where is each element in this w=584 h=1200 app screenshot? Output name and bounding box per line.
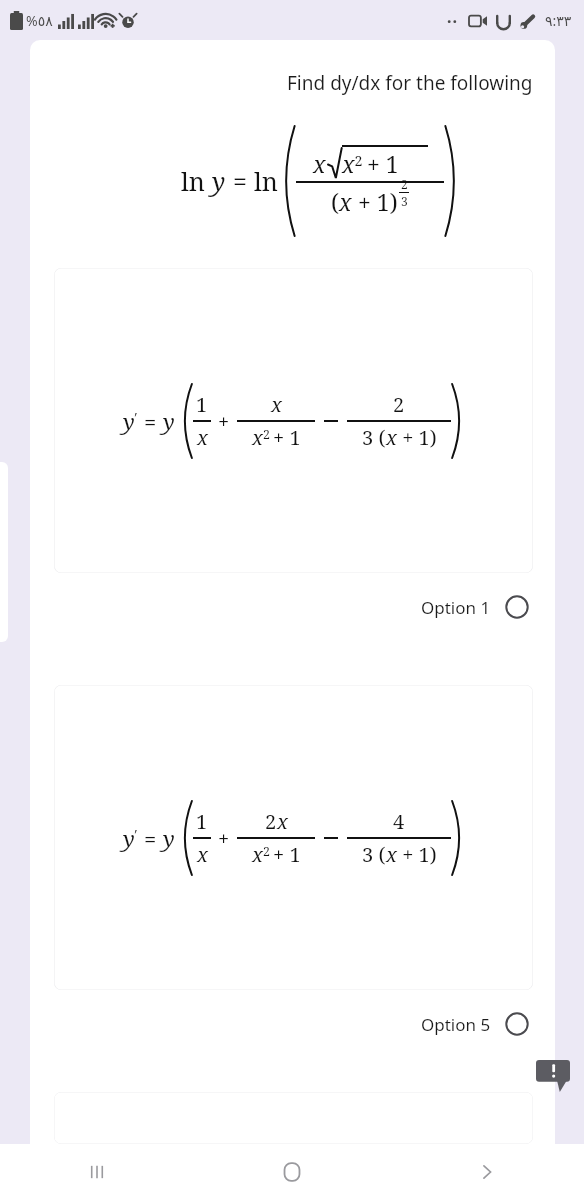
staticText: %٥٨ xyxy=(26,11,53,30)
staticText: + 1 xyxy=(273,424,301,451)
staticText: + xyxy=(218,825,230,852)
staticText: 3 ( xyxy=(362,841,386,868)
staticText: x2 xyxy=(252,424,270,451)
staticText: Find dy/dx for the following xyxy=(287,70,533,96)
staticText: x xyxy=(197,841,208,868)
staticText: 3 xyxy=(401,193,408,209)
staticText: 1 xyxy=(196,808,208,835)
staticText: + 1) xyxy=(352,186,398,217)
staticText: x xyxy=(197,424,208,451)
staticText: 3 ( xyxy=(362,424,386,451)
staticText: ٩:٣٣ xyxy=(545,11,572,30)
staticText: x xyxy=(313,148,326,179)
staticText: ( xyxy=(331,186,339,217)
staticText: = xyxy=(233,164,247,198)
staticText: x xyxy=(271,391,282,418)
button[interactable]: Option 5 xyxy=(417,1008,533,1040)
staticText: + 1) xyxy=(397,841,437,868)
staticText: y xyxy=(163,823,175,853)
staticText: ln xyxy=(254,164,278,198)
staticText: 4 xyxy=(393,808,405,835)
staticText: Option 5 xyxy=(421,1013,491,1036)
staticText: x xyxy=(339,186,352,217)
staticText: = xyxy=(144,823,157,853)
staticText: 2 xyxy=(393,391,405,418)
button[interactable]: Home xyxy=(194,1144,389,1200)
staticText: 2 xyxy=(401,176,408,192)
staticText: + 1 xyxy=(273,841,301,868)
staticText: x2 xyxy=(252,841,270,868)
staticText: + 1) xyxy=(397,424,437,451)
staticText: ln xyxy=(181,164,212,198)
staticText: y′ xyxy=(123,406,138,436)
staticText: = xyxy=(144,406,157,436)
button[interactable]: y′ xyxy=(54,685,533,990)
button[interactable]: Back xyxy=(389,1144,584,1200)
button[interactable]: y′ xyxy=(54,268,533,573)
staticText: y xyxy=(212,164,226,198)
staticText: y xyxy=(163,406,175,436)
staticText: Option 1 xyxy=(421,596,491,619)
staticText: x2 xyxy=(342,148,363,179)
staticText: + 1 xyxy=(367,148,399,179)
staticText: 1 xyxy=(196,391,208,418)
staticText: 2 xyxy=(265,808,277,835)
staticText: y′ xyxy=(123,823,138,853)
staticText: x xyxy=(386,424,397,451)
button[interactable]: Report a problem xyxy=(536,1060,570,1092)
staticText: + xyxy=(218,408,230,435)
staticText: x xyxy=(386,841,397,868)
button[interactable]: Recent apps xyxy=(0,1144,194,1200)
button[interactable]: Option 1 xyxy=(417,591,533,623)
staticText: x xyxy=(277,808,288,835)
